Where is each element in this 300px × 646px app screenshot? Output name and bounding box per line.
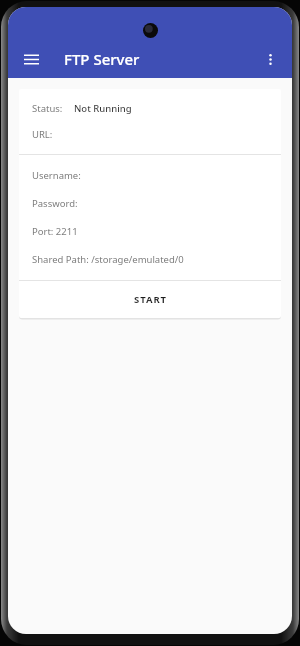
staticText: Not Running xyxy=(74,102,132,115)
staticText: Status: xyxy=(32,102,63,115)
button[interactable]: More options xyxy=(254,43,286,75)
staticText: START xyxy=(134,293,167,306)
staticText: Username: xyxy=(32,169,81,182)
button[interactable]: START xyxy=(19,281,281,318)
staticText: Password: xyxy=(32,197,78,210)
staticText: Shared Path: /storage/emulated/0 xyxy=(32,253,184,266)
staticText: Port: 2211 xyxy=(32,225,78,238)
button[interactable]: Open navigation menu xyxy=(15,43,47,75)
staticText: URL: xyxy=(32,128,53,141)
staticText: FTP Server xyxy=(64,49,140,69)
